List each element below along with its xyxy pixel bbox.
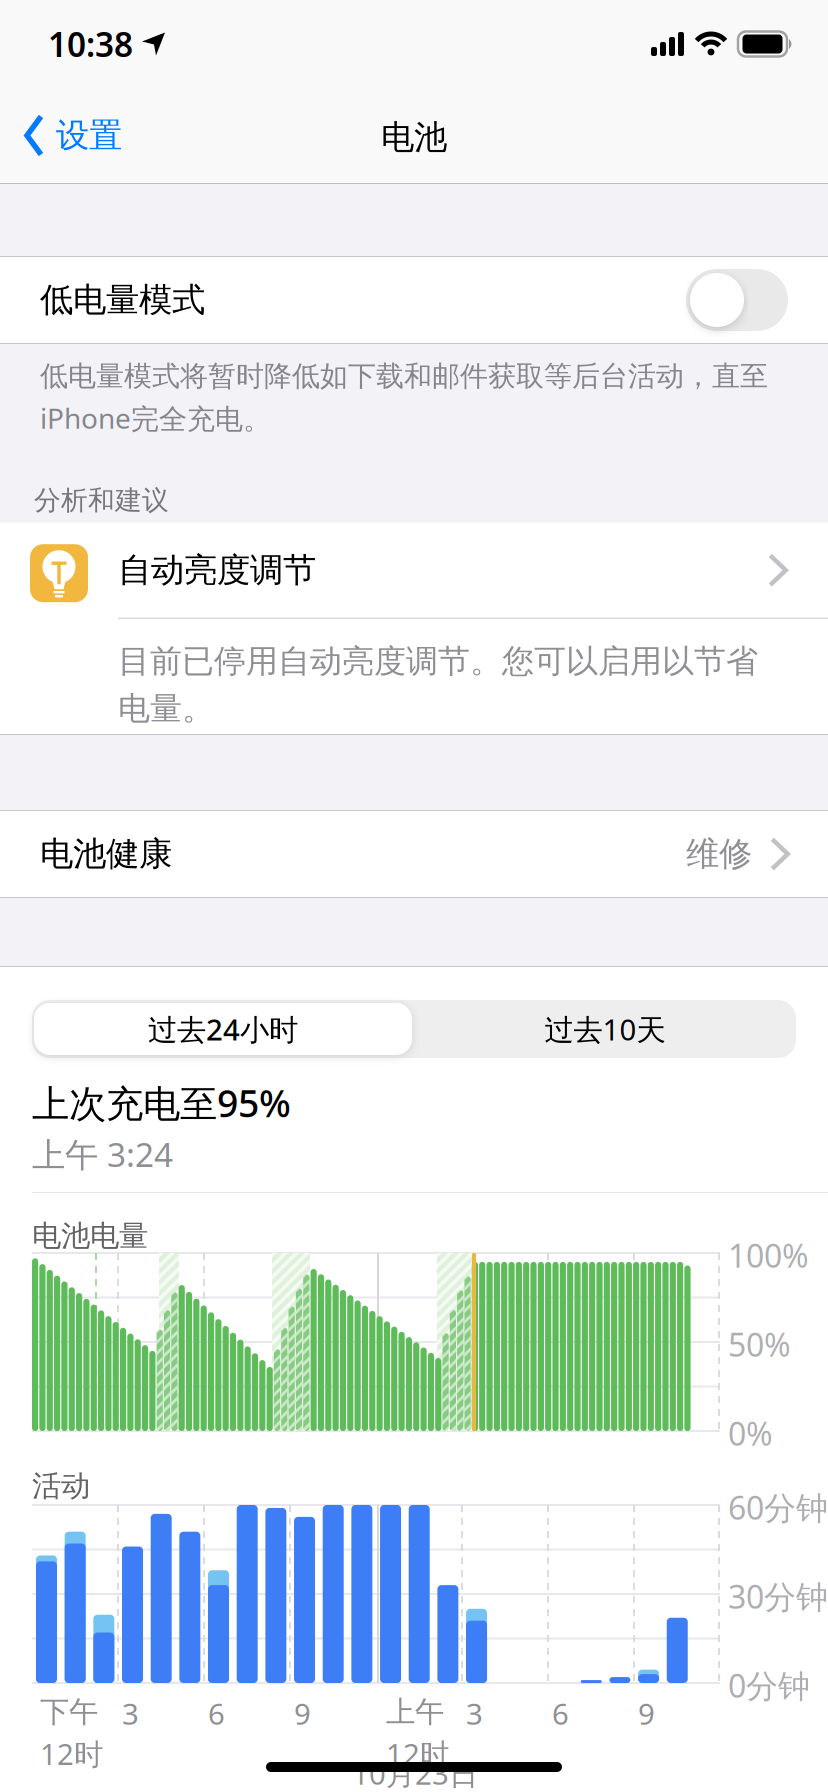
staticText: 12时 [40,1734,103,1773]
staticText: 3 [122,1694,139,1733]
staticText: 10:38 [48,22,133,66]
button[interactable]: 电池健康 [0,811,828,897]
staticText: 0% [728,1412,773,1454]
staticText: 设置 [56,115,122,156]
staticText: 电池 [381,117,447,158]
staticText: 分析和建议 [34,484,169,517]
staticText: 12时 [386,1734,449,1773]
staticText: 电池电量 [32,1218,148,1254]
staticText: 上午 [386,1694,444,1730]
staticText: 100% [728,1234,809,1276]
staticText: iPhone完全充电。 [40,399,271,437]
staticText: 电量。 [118,689,214,728]
staticText: 9 [638,1694,655,1733]
staticText: 6 [552,1694,569,1733]
staticText: 上次充电至95% [32,1078,291,1128]
staticText: 低电量模式 [40,279,205,320]
staticText: 自动亮度调节 [118,550,316,591]
staticText: 下午 [40,1694,98,1730]
staticText: 50% [728,1323,791,1365]
staticText: 过去24小时 [148,1009,298,1048]
staticText: 上午 3:24 [32,1132,173,1176]
button[interactable]: 设置 [0,113,122,157]
staticText: 10月23日 [352,1754,478,1792]
button[interactable] [686,269,788,331]
staticText: 目前已停用自动亮度调节。您可以启用以节省 [118,642,758,681]
staticText: 6 [208,1694,225,1733]
button[interactable]: 过去10天 [414,1000,796,1058]
staticText: 活动 [32,1468,90,1504]
staticText: 电池健康 [40,833,172,874]
staticText: 低电量模式将暂时降低如下载和邮件获取等后台活动，直至 [40,359,768,393]
staticText: 0分钟 [728,1664,810,1706]
staticText: 9 [294,1694,311,1733]
button[interactable]: 过去24小时 [32,1000,414,1058]
staticText: 60分钟 [728,1486,828,1528]
staticText: 过去10天 [544,1009,665,1048]
staticText: 维修 [686,833,752,874]
staticText: 30分钟 [728,1575,828,1617]
staticText: 3 [466,1694,483,1733]
button[interactable]: 自动亮度调节 [0,523,828,618]
